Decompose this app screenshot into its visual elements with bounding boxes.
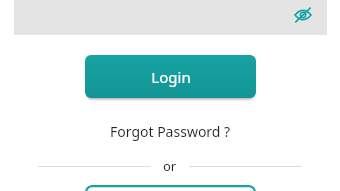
button[interactable]	[85, 185, 256, 191]
button[interactable]: Login	[85, 55, 256, 98]
staticText: Forgot Password ?	[110, 122, 231, 141]
button[interactable]: Forgot Password ?	[100, 118, 241, 145]
staticText: Login	[151, 67, 191, 87]
button[interactable]: Hide password	[287, 0, 319, 31]
button[interactable]: Hide password	[14, 0, 327, 35]
staticText: or	[163, 157, 177, 175]
